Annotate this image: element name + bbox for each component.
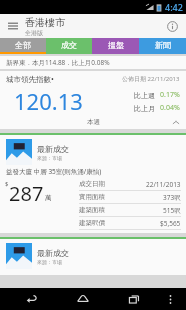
- staticText: 0.17%: [160, 90, 180, 100]
- staticText: 4:42: [165, 1, 183, 13]
- button[interactable]: 最新成交: [0, 133, 186, 233]
- staticText: 新界東．本月114.88．比上月0.08%: [6, 58, 110, 67]
- staticText: 城市領先指數•: [6, 74, 54, 84]
- button[interactable]: Recent apps: [122, 288, 146, 310]
- staticText: 最新成交: [37, 144, 69, 154]
- staticText: 建築面積: [79, 206, 105, 214]
- button[interactable]: 全部: [0, 38, 46, 52]
- staticText: 公佈日期 22/11/2013: [122, 75, 180, 83]
- staticText: 新聞: [155, 40, 171, 50]
- staticText: 萬: [45, 194, 52, 202]
- button[interactable]: 新界東．本月114.88．比上月0.08%: [0, 56, 186, 69]
- staticText: 比上週: [134, 91, 155, 100]
- button[interactable]: 最新成交: [0, 237, 186, 275]
- staticText: 來源：市場: [37, 155, 62, 161]
- staticText: 成交日期: [79, 180, 105, 188]
- staticText: 373呎: [163, 193, 181, 202]
- staticText: 22/11/2013: [146, 180, 181, 189]
- button[interactable]: Information: [163, 17, 181, 35]
- staticText: 成交: [61, 40, 77, 50]
- staticText: 本週: [87, 118, 100, 126]
- staticText: 實用面積: [79, 193, 105, 201]
- staticText: 287: [9, 180, 44, 207]
- staticText: 全港版: [25, 29, 43, 37]
- staticText: 120.13: [14, 86, 83, 116]
- staticText: 比上月: [134, 104, 155, 113]
- button[interactable]: 成交: [46, 38, 92, 52]
- button[interactable]: Home: [71, 288, 95, 310]
- staticText: 益發大廈 中層 35室(則魚涌/康怡): [6, 167, 102, 176]
- staticText: 建築呎價: [79, 219, 105, 227]
- other: Collapse: [172, 120, 180, 125]
- staticText: 來源：市場: [37, 259, 62, 265]
- button[interactable]: 城市領先指數•: [0, 71, 186, 129]
- button[interactable]: 搵盤: [92, 38, 139, 52]
- button[interactable]: More options: [161, 290, 179, 308]
- staticText: 0.04%: [160, 103, 180, 113]
- button[interactable]: Open navigation menu: [5, 18, 21, 34]
- button[interactable]: Back: [20, 288, 44, 310]
- staticText: 最新成交: [37, 248, 69, 258]
- button[interactable]: 新聞: [139, 38, 186, 52]
- staticText: 全部: [15, 40, 31, 50]
- staticText: 515呎: [163, 206, 181, 215]
- staticText: $: [5, 180, 9, 188]
- staticText: 搵盤: [108, 40, 124, 50]
- staticText: 香港樓市: [25, 16, 65, 29]
- staticText: $5,565: [160, 219, 181, 228]
